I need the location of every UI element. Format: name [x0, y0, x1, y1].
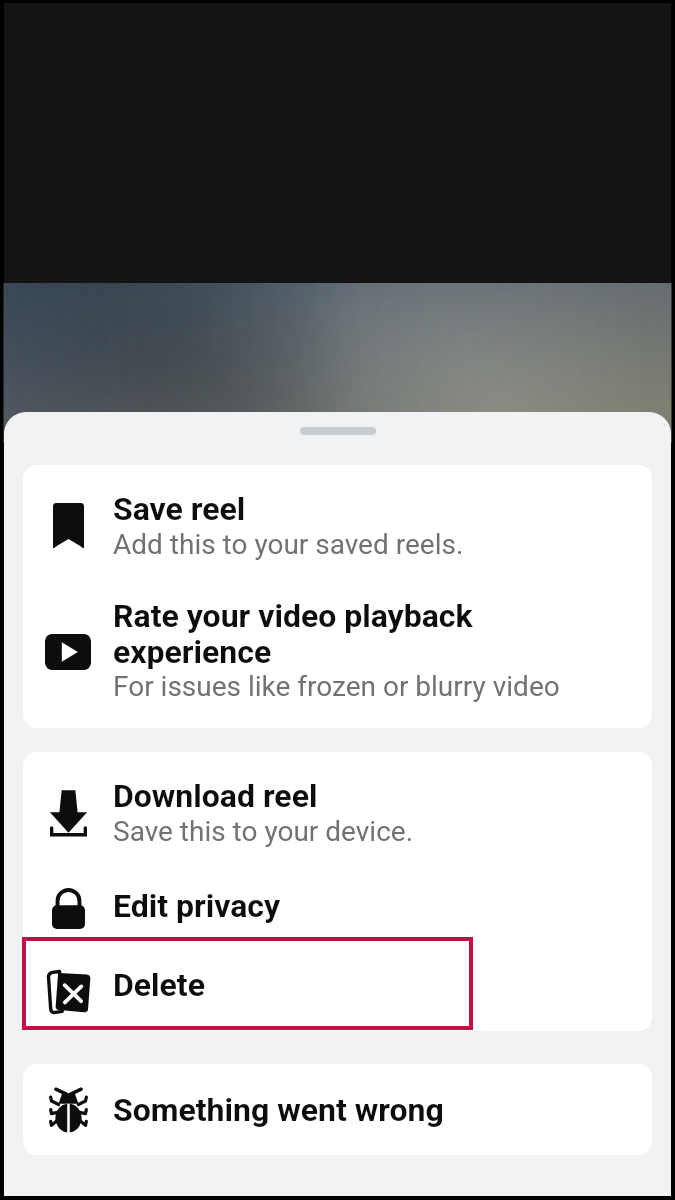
staticText: Save reel — [113, 490, 246, 528]
staticText: Edit privacy — [113, 887, 281, 925]
other: Report problem — [23, 1071, 113, 1148]
staticText: Rate your video playback experience — [113, 597, 604, 670]
staticText: Add this to your saved reels. — [113, 528, 464, 561]
staticText: Delete — [113, 966, 205, 1004]
button[interactable]: Rate playback — [23, 579, 652, 721]
other: Delete — [23, 945, 113, 1024]
other: Edit privacy — [23, 866, 113, 945]
button[interactable]: Save reel — [23, 472, 652, 579]
staticText: Download reel — [113, 777, 318, 815]
other: Save reel — [23, 472, 113, 579]
staticText: Save this to your device. — [113, 815, 414, 848]
other: Rate playback — [23, 579, 113, 721]
staticText: For issues like frozen or blurry video — [113, 670, 560, 703]
button[interactable]: Edit privacy — [23, 866, 652, 945]
button[interactable]: Report problem — [23, 1071, 652, 1148]
other: Download reel — [23, 759, 113, 866]
staticText: Something went wrong — [113, 1091, 444, 1129]
button[interactable]: Delete — [23, 945, 652, 1024]
button[interactable]: Download reel — [23, 759, 652, 866]
